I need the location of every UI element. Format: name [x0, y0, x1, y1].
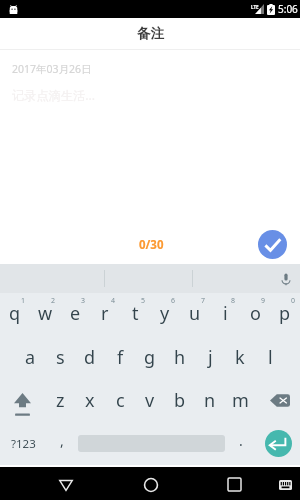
button[interactable]: 1: [0, 293, 30, 336]
staticText: z: [56, 388, 65, 413]
button[interactable]: 4: [90, 293, 120, 336]
button[interactable]: Home: [128, 467, 173, 500]
button[interactable]: ,: [46, 422, 78, 465]
button[interactable]: 9: [240, 293, 270, 336]
button[interactable]: Shift: [0, 379, 45, 422]
button[interactable]: 8: [210, 293, 240, 336]
staticText: 0: [291, 296, 296, 306]
button[interactable]: Recent apps: [212, 467, 257, 500]
staticText: r: [101, 301, 109, 326]
button[interactable]: 0: [270, 293, 300, 336]
staticText: 5:06: [278, 2, 298, 16]
staticText: g: [144, 345, 156, 370]
staticText: f: [117, 345, 124, 370]
button[interactable]: a: [15, 336, 45, 379]
staticText: k: [235, 345, 245, 370]
button[interactable]: s: [45, 336, 75, 379]
staticText: l: [268, 345, 273, 370]
button[interactable]: ?123: [0, 422, 46, 465]
staticText: a: [25, 345, 36, 370]
staticText: 记录点滴生活...: [12, 87, 95, 104]
staticText: s: [56, 345, 65, 370]
staticText: c: [116, 388, 125, 413]
button[interactable]: m: [225, 379, 255, 422]
button[interactable]: 7: [180, 293, 210, 336]
staticText: x: [85, 388, 95, 413]
button[interactable]: c: [105, 379, 135, 422]
button[interactable]: 6: [150, 293, 180, 336]
button[interactable]: .: [225, 422, 257, 465]
button[interactable]: v: [135, 379, 165, 422]
button[interactable]: k: [225, 336, 255, 379]
staticText: n: [204, 388, 216, 413]
staticText: 3: [81, 296, 86, 306]
button[interactable]: Voice input: [270, 264, 300, 293]
staticText: t: [132, 301, 139, 326]
staticText: 9: [261, 296, 266, 306]
button[interactable]: Save note: [258, 230, 287, 259]
staticText: 6: [171, 296, 176, 306]
staticText: 1: [21, 296, 26, 306]
staticText: 0/30: [139, 237, 164, 253]
staticText: u: [189, 301, 201, 326]
staticText: 7: [201, 296, 206, 306]
button[interactable]: h: [165, 336, 195, 379]
staticText: e: [70, 301, 81, 326]
staticText: 8: [231, 296, 236, 306]
button[interactable]: f: [105, 336, 135, 379]
staticText: m: [232, 388, 249, 413]
button[interactable]: j: [195, 336, 225, 379]
button[interactable]: z: [45, 379, 75, 422]
staticText: ,: [60, 431, 64, 450]
staticText: ?123: [11, 436, 36, 452]
staticText: 4: [111, 296, 116, 306]
staticText: 2017年03月26日: [12, 62, 92, 76]
staticText: v: [145, 388, 155, 413]
staticText: i: [223, 301, 228, 326]
button[interactable]: x: [75, 379, 105, 422]
button[interactable]: b: [165, 379, 195, 422]
staticText: j: [208, 345, 213, 370]
staticText: y: [160, 301, 170, 326]
staticText: d: [84, 345, 96, 370]
staticText: h: [174, 345, 186, 370]
button[interactable]: l: [255, 336, 285, 379]
staticText: p: [279, 301, 291, 326]
button[interactable]: d: [75, 336, 105, 379]
button[interactable]: Backspace: [255, 379, 300, 422]
staticText: 备注: [137, 25, 164, 42]
button[interactable]: g: [135, 336, 165, 379]
staticText: .: [239, 431, 243, 450]
button[interactable]: Switch keyboard: [264, 467, 300, 500]
staticText: q: [9, 301, 21, 326]
button[interactable]: n: [195, 379, 225, 422]
staticText: o: [250, 301, 261, 326]
staticText: 5: [141, 296, 146, 306]
button[interactable]: Enter: [257, 422, 300, 465]
staticText: w: [38, 301, 53, 326]
button[interactable]: 2: [30, 293, 60, 336]
staticText: 2: [51, 296, 56, 306]
button[interactable]: Back: [43, 467, 88, 500]
button[interactable]: 5: [120, 293, 150, 336]
staticText: LTE: [251, 4, 259, 10]
staticText: b: [174, 388, 186, 413]
button[interactable]: 3: [60, 293, 90, 336]
